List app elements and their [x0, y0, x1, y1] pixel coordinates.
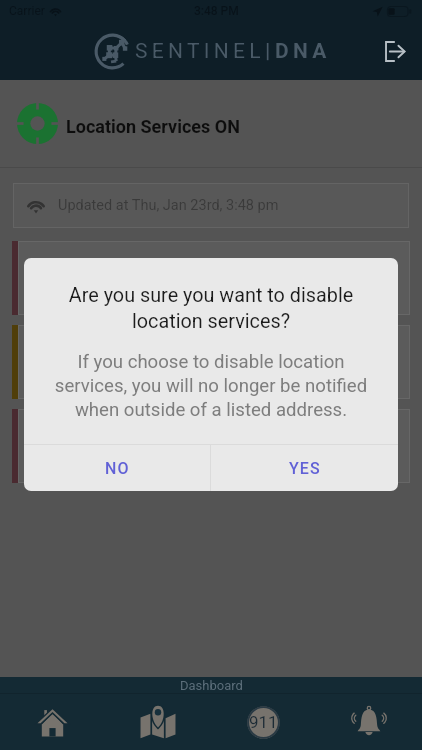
staticText: If you choose to disable location servic…: [41, 351, 381, 421]
staticText: |: [265, 39, 275, 64]
staticText: Dashboard: [180, 678, 243, 693]
staticText: 3:48 PM: [194, 4, 239, 18]
staticText: YES: [289, 459, 321, 478]
staticText: DNA: [275, 39, 331, 64]
button[interactable]: Home: [0, 694, 105, 750]
button[interactable]: Emergency 911: [210, 694, 316, 750]
staticText: Carrier: [9, 4, 45, 18]
staticText: Updated at Thu, Jan 23rd, 3:48 pm: [58, 197, 279, 214]
button[interactable]: [12, 409, 410, 483]
staticText: NO: [105, 459, 130, 478]
button[interactable]: Log out: [370, 29, 414, 73]
button[interactable]: Location Services ON: [0, 80, 422, 167]
staticText: SENTINEL: [135, 39, 265, 64]
staticText: Are you sure you want to disable locatio…: [41, 284, 381, 333]
button[interactable]: Alerts: [316, 694, 422, 750]
button[interactable]: Map: [105, 694, 210, 750]
button[interactable]: YES: [211, 445, 398, 491]
button[interactable]: NO: [24, 445, 210, 491]
staticText: Location Services ON: [66, 116, 240, 137]
button[interactable]: [12, 325, 410, 399]
button[interactable]: [12, 241, 410, 315]
staticText: 911: [249, 712, 278, 732]
